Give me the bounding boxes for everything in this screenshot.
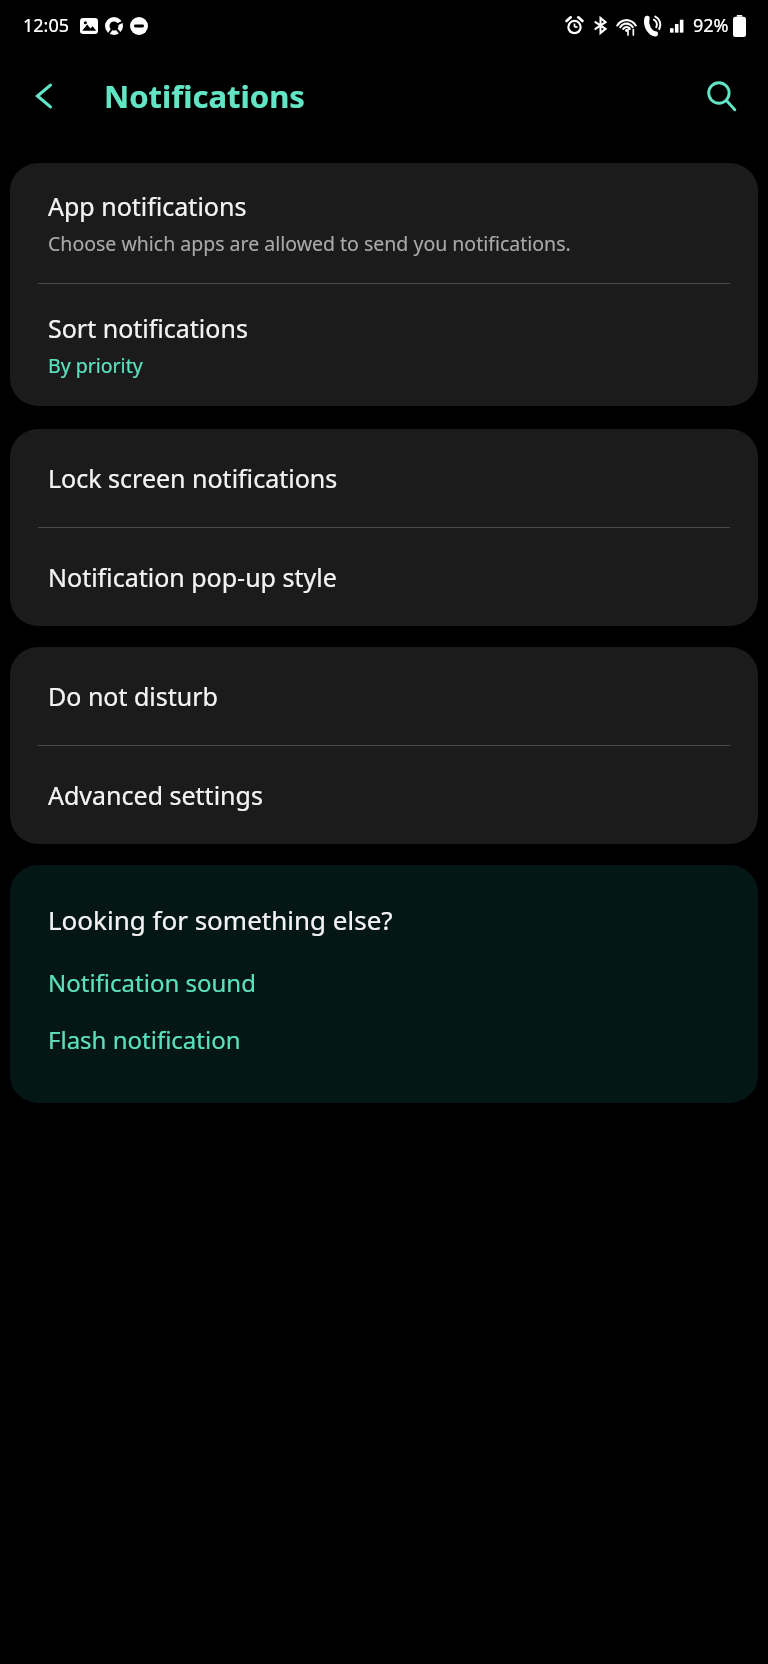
staticText: 92% [693,13,729,38]
staticText: Flash notification [48,1023,241,1056]
button[interactable]: Do not disturb [10,647,758,745]
button[interactable]: Search [700,75,742,117]
button[interactable]: Back [28,79,62,113]
staticText: Notification pop-up style [48,560,337,594]
button[interactable]: Sort notifications [10,284,758,406]
staticText: Lock screen notifications [48,461,338,495]
button[interactable]: Notification pop-up style [10,528,758,626]
button[interactable]: Lock screen notifications [10,429,758,527]
staticText: Looking for something else? [48,902,393,937]
staticText: Choose which apps are allowed to send yo… [48,230,571,257]
button[interactable]: Advanced settings [10,746,758,844]
staticText: Do not disturb [48,679,218,713]
staticText: Advanced settings [48,778,263,812]
staticText: 12:05 [23,13,70,38]
staticText: Notification sound [48,966,256,999]
button[interactable]: Notification sound [10,961,758,1004]
staticText: Sort notifications [48,311,248,345]
button[interactable]: Flash notification [10,1018,758,1061]
staticText: Notifications [104,75,305,117]
staticText: By priority [48,352,143,379]
staticText: App notifications [48,189,247,223]
button[interactable]: App notifications [10,163,758,283]
